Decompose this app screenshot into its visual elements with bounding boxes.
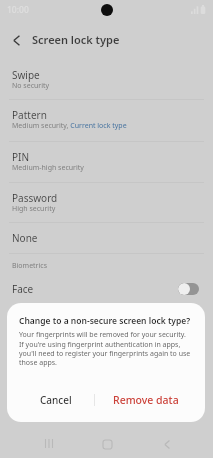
button[interactable]: Face bbox=[0, 274, 213, 302]
staticText: No security bbox=[12, 81, 50, 91]
staticText: Password bbox=[12, 191, 58, 205]
staticText: Change to a non-secure screen lock type? bbox=[19, 315, 191, 327]
button[interactable]: Home bbox=[92, 429, 122, 458]
button[interactable]: Pattern bbox=[0, 100, 213, 141]
staticText: Biometrics bbox=[12, 261, 48, 271]
button[interactable]: PIN bbox=[0, 142, 213, 182]
staticText: Medium-high security bbox=[12, 163, 84, 173]
staticText: PIN bbox=[12, 150, 30, 164]
button[interactable]: Remove data bbox=[95, 387, 205, 413]
staticText: Remove data bbox=[113, 393, 179, 407]
button[interactable]: None bbox=[0, 223, 213, 253]
staticText: 10:00 bbox=[7, 4, 29, 16]
staticText: High security bbox=[12, 204, 56, 214]
button[interactable]: Face toggle bbox=[178, 283, 199, 295]
staticText: Screen lock type bbox=[32, 32, 120, 47]
staticText: None bbox=[12, 231, 38, 245]
button[interactable]: Recents bbox=[34, 428, 64, 458]
button[interactable]: Cancel bbox=[7, 387, 94, 413]
button[interactable]: Swipe bbox=[0, 57, 213, 99]
staticText: Medium security, Current lock type bbox=[12, 121, 127, 131]
staticText: Your fingerprints will be removed for yo… bbox=[19, 330, 195, 367]
button[interactable]: Password bbox=[0, 183, 213, 222]
staticText: Pattern bbox=[12, 108, 47, 122]
staticText: Cancel bbox=[40, 393, 72, 407]
staticText: Face bbox=[12, 282, 34, 296]
staticText: Swipe bbox=[12, 68, 40, 82]
button[interactable]: Back bbox=[6, 30, 26, 50]
